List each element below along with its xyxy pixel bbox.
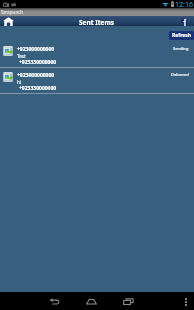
button[interactable]: +923000000000: [0, 68, 194, 94]
button[interactable]: Recent apps: [115, 292, 141, 310]
staticText: Sent Items: [79, 18, 115, 27]
button[interactable]: Home: [78, 292, 104, 310]
button[interactable]: Back: [41, 292, 67, 310]
staticText: Smspunch: [1, 9, 24, 15]
button[interactable]: Facebook: [181, 18, 188, 25]
staticText: Test: [17, 53, 26, 59]
staticText: hi: [17, 79, 21, 85]
staticText: +923000000000: [17, 46, 55, 53]
staticText: Refresh: [172, 32, 192, 39]
button[interactable]: More options: [182, 293, 190, 310]
staticText: 12:16: [175, 0, 193, 8]
staticText: Delivered: [171, 72, 189, 77]
staticText: Sending: [173, 46, 189, 51]
staticText: +923330000000: [19, 85, 57, 92]
button[interactable]: Home: [3, 16, 14, 26]
button[interactable]: Refresh: [169, 31, 194, 40]
staticText: +923330000000: [19, 59, 57, 66]
button[interactable]: +923000000000: [0, 42, 194, 68]
staticText: +923000000000: [17, 72, 55, 79]
